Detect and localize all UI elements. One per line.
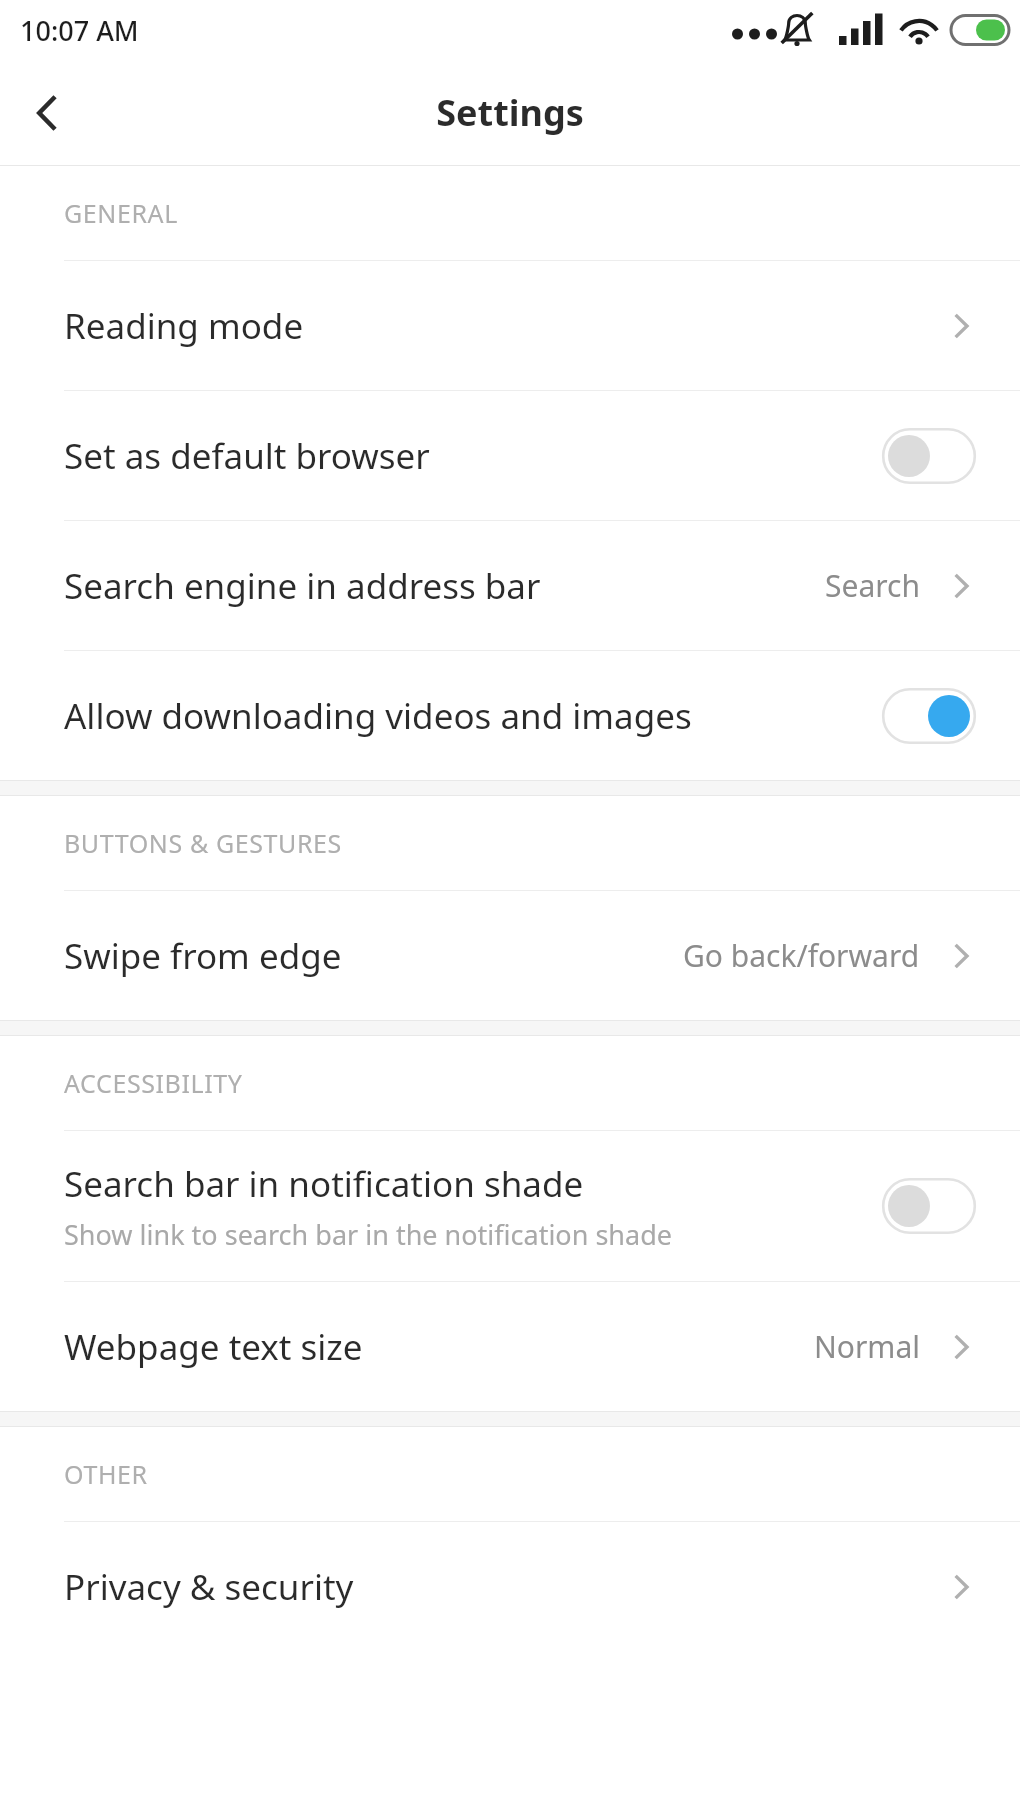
staticText: BUTTONS & GESTURES [64,826,342,860]
button[interactable]: Off [882,1178,976,1234]
button[interactable]: Back [0,65,96,161]
button[interactable]: On [882,688,976,744]
staticText: Normal [814,1326,920,1367]
button[interactable]: Privacy & security [0,1522,1020,1651]
staticText: Privacy & security [64,1563,946,1611]
button[interactable]: Swipe from edge [0,891,1020,1020]
staticText: Show link to search bar in the notificat… [64,1216,673,1253]
staticText: Set as default browser [64,432,430,480]
staticText: 10:07 AM [20,12,139,49]
staticText: Go back/forward [683,935,920,976]
staticText: Search [825,565,920,606]
staticText: Webpage text size [64,1323,814,1371]
staticText: ACCESSIBILITY [64,1066,243,1100]
staticText: OTHER [64,1457,148,1491]
button[interactable]: Search engine in address bar [0,521,1020,650]
staticText: Settings [436,88,584,137]
staticText: Allow downloading videos and images [64,692,692,740]
button[interactable]: Webpage text size [0,1282,1020,1411]
button[interactable]: Reading mode [0,261,1020,390]
staticText: Search engine in address bar [64,562,825,610]
button[interactable]: Search bar in notification shade [0,1131,1020,1281]
staticText: Reading mode [64,302,946,350]
staticText: GENERAL [64,196,178,230]
button[interactable]: Set as default browser [0,391,1020,520]
button[interactable]: Allow downloading videos and images [0,651,1020,780]
staticText: Search bar in notification shade [64,1160,584,1208]
staticText: Swipe from edge [64,932,683,980]
button[interactable]: Off [882,428,976,484]
